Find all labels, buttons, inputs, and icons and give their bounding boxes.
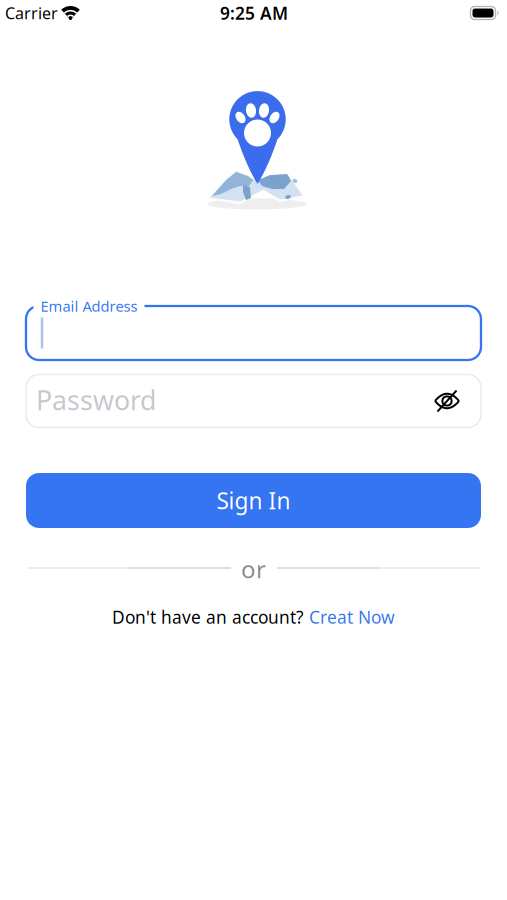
staticText: Creat Now	[309, 605, 395, 628]
button[interactable]: Creat Now	[309, 605, 395, 628]
staticText: or	[241, 553, 266, 585]
staticText: Email Address	[40, 296, 137, 316]
button[interactable]: Password	[26, 374, 481, 427]
staticText: Password	[36, 382, 156, 418]
staticText: Don't have an account?	[112, 605, 304, 628]
staticText: 9:25 AM	[220, 1, 288, 24]
staticText: Carrier	[5, 2, 58, 24]
button[interactable]: Sign In	[26, 473, 481, 528]
staticText: Sign In	[216, 485, 290, 515]
button[interactable]: Email Address	[26, 306, 481, 360]
button[interactable]: Show password	[434, 390, 460, 412]
